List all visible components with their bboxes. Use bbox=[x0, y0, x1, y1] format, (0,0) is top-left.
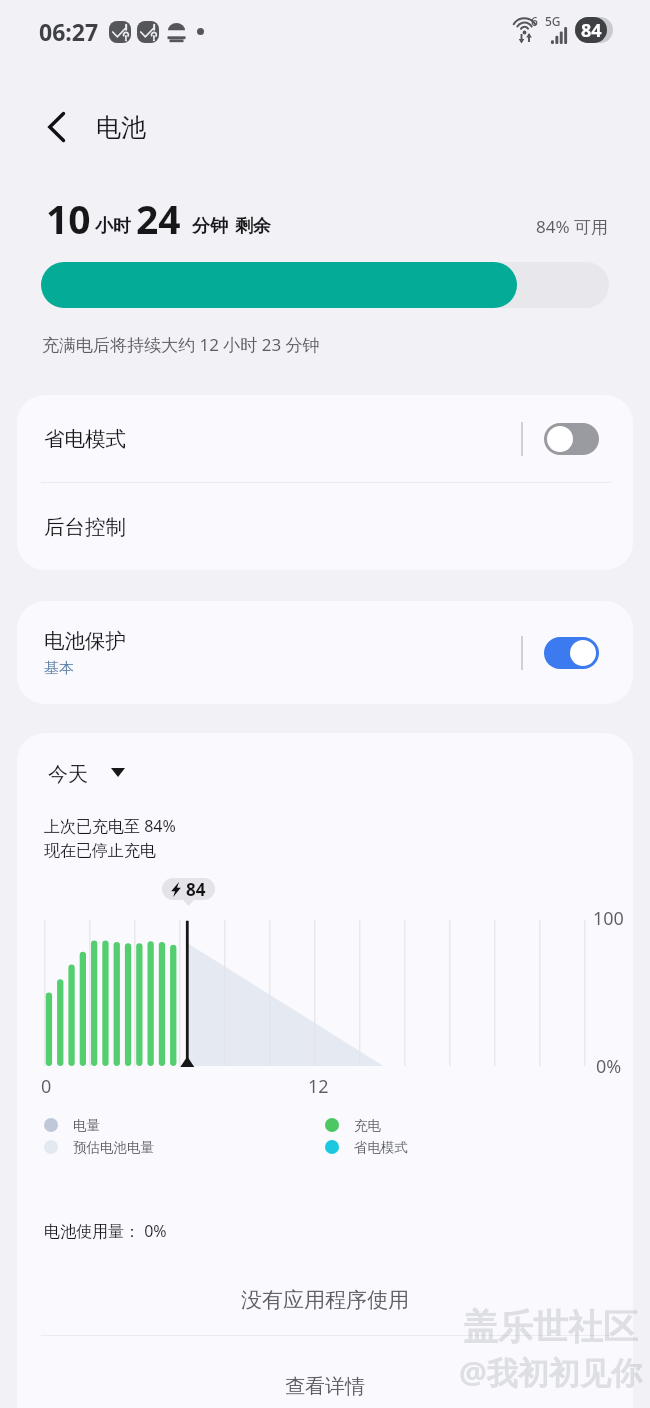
staticText: 充满电后将持续大约 12 小时 23 分钟 bbox=[42, 333, 320, 356]
staticText: 84 bbox=[581, 18, 602, 43]
staticText: 省电模式 bbox=[354, 1139, 408, 1156]
staticText: 充电 bbox=[354, 1117, 381, 1134]
staticText: 电池保护 bbox=[44, 628, 126, 654]
staticText: 上次已充电至 84% bbox=[44, 815, 176, 837]
staticText: 0% bbox=[596, 1054, 622, 1079]
button[interactable]: Switch on bbox=[544, 637, 599, 669]
button[interactable]: 查看详情 bbox=[17, 1336, 633, 1408]
staticText: 24 bbox=[136, 192, 181, 245]
staticText: @我初初见你 bbox=[459, 1351, 642, 1393]
staticText: 现在已停止充电 bbox=[44, 841, 156, 861]
staticText: 84% 可用 bbox=[536, 215, 608, 238]
staticText: 查看详情 bbox=[285, 1374, 365, 1399]
staticText: 省电模式 bbox=[44, 426, 126, 452]
staticText: 电池 bbox=[96, 112, 146, 143]
button[interactable]: Switch off bbox=[544, 423, 599, 455]
button[interactable]: Back bbox=[28, 99, 84, 155]
staticText: 基本 bbox=[44, 659, 74, 678]
staticText: 预估电池电量 bbox=[73, 1139, 154, 1156]
button[interactable]: 今天 bbox=[40, 756, 133, 793]
button[interactable]: 后台控制 bbox=[17, 483, 633, 570]
staticText: 没有应用程序使用 bbox=[241, 1287, 409, 1313]
staticText: 电池使用量： 0% bbox=[44, 1220, 167, 1242]
staticText: 后台控制 bbox=[44, 514, 126, 540]
staticText: 84 bbox=[186, 878, 206, 900]
staticText: 5G bbox=[545, 13, 561, 29]
staticText: 电量 bbox=[73, 1117, 100, 1134]
staticText: 盖乐世社区 bbox=[463, 1305, 638, 1349]
staticText: 今天 bbox=[48, 762, 88, 787]
staticText: 06:27 bbox=[39, 16, 99, 47]
staticText: 12 bbox=[308, 1074, 329, 1099]
staticText: 6 bbox=[531, 13, 538, 29]
staticText: 剩余 bbox=[235, 215, 271, 238]
button[interactable]: 省电模式 bbox=[17, 395, 633, 483]
staticText: 10 bbox=[46, 192, 91, 245]
staticText: 小时 bbox=[95, 215, 131, 238]
staticText: 分钟 bbox=[192, 215, 228, 238]
button[interactable]: 电池保护 bbox=[17, 601, 633, 704]
staticText: 0 bbox=[41, 1074, 52, 1099]
staticText: 100 bbox=[593, 906, 624, 931]
